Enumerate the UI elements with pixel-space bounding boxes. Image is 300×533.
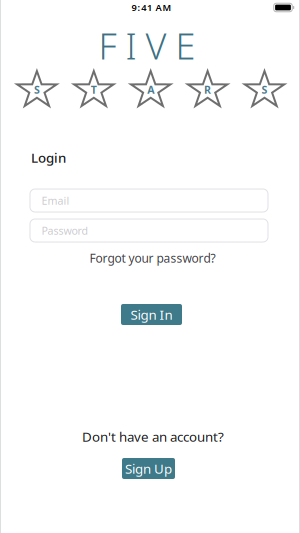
staticText: Sign Up <box>125 460 172 477</box>
staticText: Password <box>40 222 94 238</box>
staticText: 9:41 AM <box>132 1 171 14</box>
staticText: Email <box>40 192 71 208</box>
button[interactable]: Sign In <box>121 304 182 325</box>
staticText: Password <box>41 223 88 238</box>
staticText: Login <box>31 149 66 166</box>
staticText: T <box>91 82 97 97</box>
button[interactable]: Forgot your password? <box>89 250 215 266</box>
staticText: R <box>204 82 211 97</box>
staticText: V <box>145 22 166 69</box>
staticText: F <box>98 22 116 69</box>
staticText: I <box>125 22 136 69</box>
textField[interactable]: Email <box>40 192 268 208</box>
staticText: S <box>34 82 40 97</box>
staticText: A <box>147 82 154 97</box>
staticText: Email <box>41 193 69 208</box>
staticText: E <box>175 22 195 69</box>
staticText: Sign In <box>130 306 172 323</box>
button[interactable]: Sign Up <box>122 458 175 479</box>
staticText: Don't have an account? <box>82 428 224 445</box>
staticText: S <box>261 82 267 97</box>
staticText: Forgot your password? <box>89 250 215 266</box>
textField[interactable]: Password <box>40 222 268 238</box>
